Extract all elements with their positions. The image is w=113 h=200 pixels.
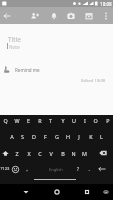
button[interactable]: K xyxy=(85,128,96,144)
button[interactable]: Recent apps xyxy=(79,184,95,200)
staticText: . xyxy=(88,166,90,172)
button[interactable]: G xyxy=(51,128,62,144)
button[interactable]: S xyxy=(17,128,28,144)
button[interactable]: I xyxy=(79,112,90,128)
staticText: D xyxy=(32,133,36,140)
button[interactable]: L xyxy=(96,128,107,144)
button[interactable]: Back xyxy=(0,7,15,24)
button[interactable]: Enter xyxy=(96,161,107,177)
staticText: Remind me xyxy=(15,67,40,73)
button[interactable]: H xyxy=(62,128,73,144)
button[interactable]: O xyxy=(90,112,101,128)
staticText: Y xyxy=(61,117,65,124)
button[interactable]: U xyxy=(68,112,79,128)
staticText: U xyxy=(72,117,76,124)
button[interactable]: Shift xyxy=(0,145,11,161)
staticText: M xyxy=(82,150,87,157)
staticText: G xyxy=(55,133,59,140)
button[interactable]: Space xyxy=(35,161,77,177)
button[interactable]: T xyxy=(45,112,56,128)
button[interactable]: V xyxy=(45,145,56,161)
staticText: ? xyxy=(77,166,79,172)
staticText: A xyxy=(10,133,14,140)
button[interactable]: Emoji xyxy=(10,161,21,177)
button[interactable]: C xyxy=(34,145,45,161)
button[interactable]: More options xyxy=(98,7,113,24)
button[interactable]: R xyxy=(34,112,45,128)
staticText: Edited 18:08 xyxy=(81,78,106,84)
button[interactable]: B xyxy=(57,145,68,161)
button[interactable]: Archive xyxy=(81,7,97,24)
button[interactable]: Remind me xyxy=(0,63,113,75)
button[interactable]: , xyxy=(21,161,32,177)
button[interactable]: Reminder xyxy=(46,7,62,24)
staticText: W xyxy=(14,117,20,124)
staticText: K xyxy=(89,133,93,140)
button[interactable]: Backspace xyxy=(97,145,108,161)
button[interactable]: Back xyxy=(18,184,34,200)
staticText: Z xyxy=(15,150,19,157)
staticText: 18:08 xyxy=(100,1,112,7)
staticText: I xyxy=(84,117,86,124)
button[interactable]: . xyxy=(83,161,94,177)
staticText: T xyxy=(49,117,52,124)
staticText: , xyxy=(26,166,28,172)
staticText: ?123 xyxy=(0,166,10,172)
button[interactable]: E xyxy=(23,112,34,128)
button[interactable]: ?123 xyxy=(0,161,10,177)
staticText: O xyxy=(93,117,98,124)
button[interactable]: Q xyxy=(0,112,11,128)
staticText: S xyxy=(21,133,24,140)
staticText: F xyxy=(44,133,47,140)
staticText: J xyxy=(78,133,80,140)
button[interactable]: N xyxy=(68,145,79,161)
staticText: Q xyxy=(3,117,8,124)
staticText: Title xyxy=(8,35,21,44)
staticText: R xyxy=(38,117,42,124)
button[interactable]: M xyxy=(79,145,90,161)
button[interactable]: Add image xyxy=(63,7,79,24)
button[interactable]: W xyxy=(11,112,22,128)
staticText: C xyxy=(38,150,42,157)
button[interactable]: F xyxy=(40,128,51,144)
button[interactable]: ? xyxy=(72,161,83,177)
button[interactable]: P xyxy=(102,112,113,128)
button[interactable]: Home xyxy=(49,184,65,200)
staticText: H xyxy=(66,133,70,140)
staticText: Note xyxy=(9,44,20,50)
staticText: P xyxy=(106,117,110,124)
staticText: E xyxy=(27,117,30,124)
button[interactable]: X xyxy=(23,145,34,161)
staticText: X xyxy=(27,150,31,157)
staticText: English xyxy=(49,167,63,172)
button[interactable]: Y xyxy=(57,112,68,128)
button[interactable]: A xyxy=(6,128,17,144)
staticText: V xyxy=(49,150,53,157)
button[interactable]: D xyxy=(28,128,39,144)
button[interactable]: Hide keyboard xyxy=(98,184,113,200)
staticText: B xyxy=(61,150,65,157)
button[interactable]: Z xyxy=(11,145,22,161)
staticText: L xyxy=(100,133,103,140)
staticText: N xyxy=(71,150,76,157)
button[interactable]: J xyxy=(73,128,84,144)
button[interactable]: Add collaborator xyxy=(27,7,43,24)
